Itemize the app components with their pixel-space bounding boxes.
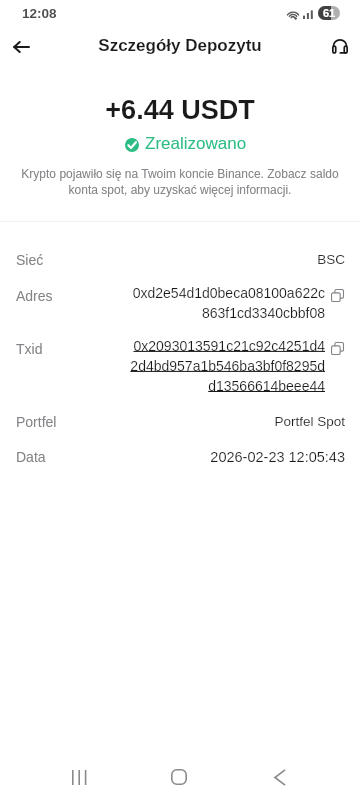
button[interactable]: Home (155, 753, 203, 799)
button[interactable]: Back (0, 24, 42, 70)
staticText: +6.44 USDT (0, 95, 360, 125)
staticText: Portfel (16, 414, 57, 430)
staticText: Zrealizowano (145, 134, 247, 153)
staticText: 0xd2e54d1d0beca08100a622c863f1cd3340cbbf… (128, 285, 325, 321)
staticText: 61 (323, 7, 336, 19)
button[interactable]: Copy (331, 289, 344, 302)
button[interactable]: Back (256, 753, 304, 799)
staticText: BSC (0, 252, 345, 267)
button[interactable]: Copy (331, 342, 344, 355)
button[interactable]: Recent apps (54, 753, 102, 799)
staticText: Krypto pojawiło się na Twoim koncie Bina… (20, 167, 340, 197)
staticText: 12:08 (22, 6, 57, 21)
staticText: Portfel Spot (0, 414, 345, 429)
button[interactable]: Customer support (318, 24, 360, 70)
staticText: Szczegóły Depozytu (0, 36, 360, 55)
staticText: Data (16, 449, 46, 465)
staticText: 0x2093013591c21c92c4251d42d4bd957a1b546b… (128, 338, 325, 394)
staticText: Txid (16, 341, 43, 357)
staticText: Sieć (16, 252, 44, 268)
staticText: 2026-02-23 12:05:43 (0, 449, 345, 465)
staticText: Adres (16, 288, 53, 304)
